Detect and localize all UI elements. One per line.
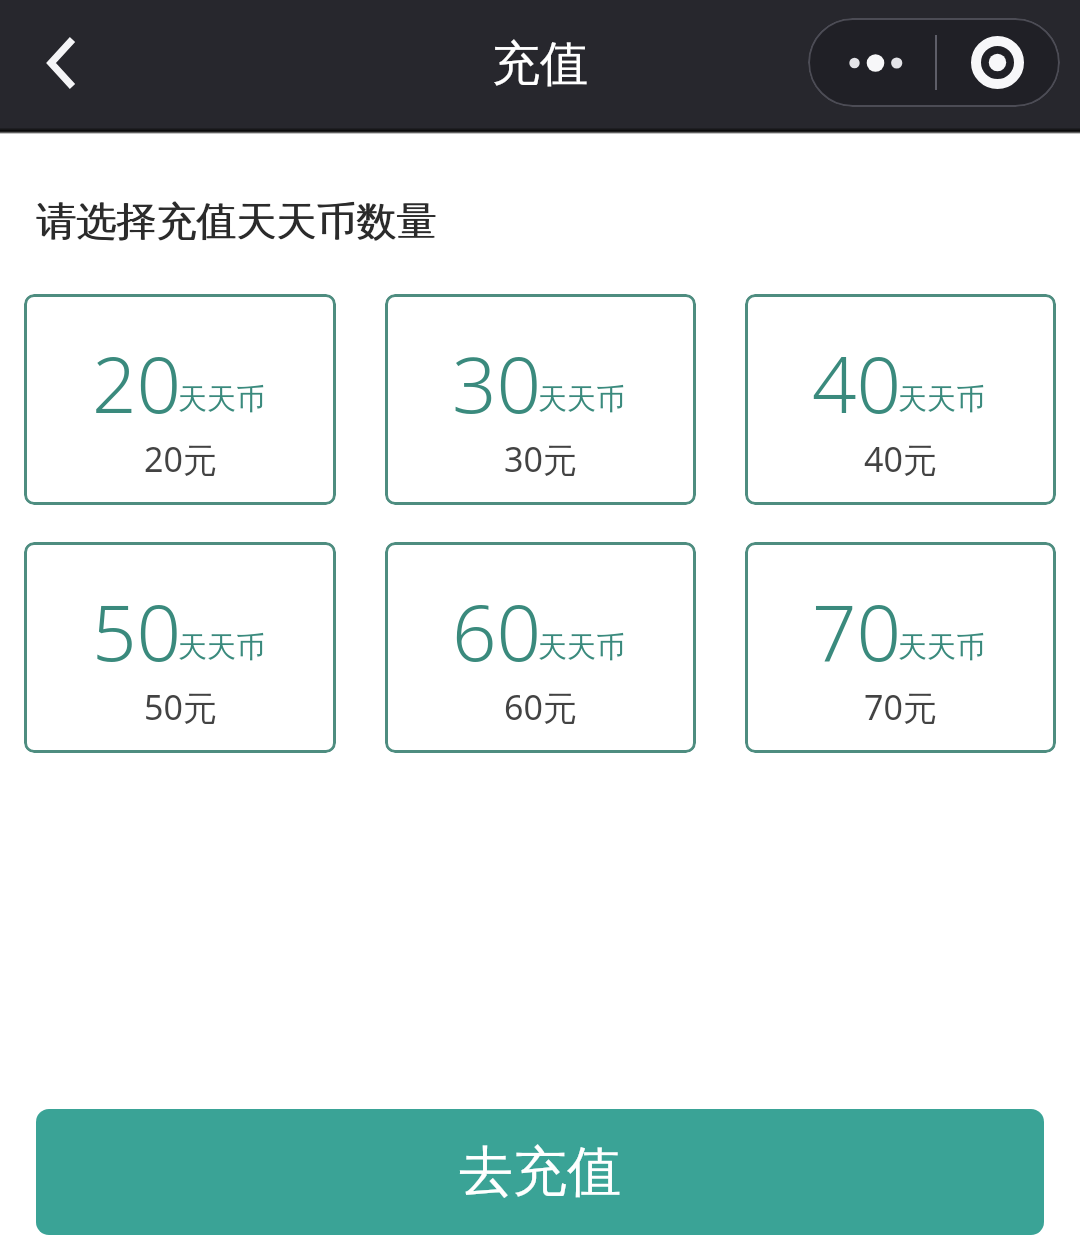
- staticText: 70元: [864, 684, 937, 730]
- staticText: 20元: [144, 436, 217, 482]
- staticText: 天天币: [898, 381, 985, 418]
- button[interactable]: 40: [745, 294, 1056, 505]
- button[interactable]: 20: [24, 294, 336, 505]
- button[interactable]: 去充值: [36, 1109, 1044, 1235]
- staticText: 60元: [504, 684, 577, 730]
- button[interactable]: More options: [808, 18, 934, 107]
- staticText: 天天币: [538, 381, 625, 418]
- staticText: 去充值: [459, 1138, 621, 1206]
- staticText: 50元: [144, 684, 217, 730]
- staticText: 天天币: [898, 629, 985, 666]
- staticText: 充值: [492, 34, 588, 94]
- button[interactable]: 60: [385, 542, 696, 753]
- button[interactable]: 30: [385, 294, 696, 505]
- staticText: 天天币: [178, 629, 265, 666]
- staticText: 天天币: [538, 629, 625, 666]
- button[interactable]: Close mini program: [935, 18, 1060, 107]
- staticText: 40: [812, 330, 902, 436]
- button[interactable]: Back: [20, 15, 100, 111]
- button[interactable]: 50: [24, 542, 336, 753]
- staticText: 30元: [504, 436, 577, 482]
- button[interactable]: 70: [745, 542, 1056, 753]
- staticText: 请选择充值天天币数量: [36, 196, 436, 246]
- staticText: 20: [92, 330, 182, 436]
- staticText: 40元: [864, 436, 937, 482]
- staticText: 50: [92, 578, 182, 684]
- staticText: 天天币: [178, 381, 265, 418]
- staticText: 30: [452, 330, 542, 436]
- staticText: 60: [452, 578, 542, 684]
- staticText: 70: [812, 578, 902, 684]
